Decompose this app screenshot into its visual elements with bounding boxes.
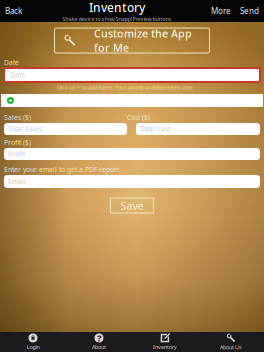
button[interactable]: Customize the App for Me [54, 28, 209, 53]
staticText: Date [4, 58, 19, 67]
staticText: Click on '+' to add Items. You can edit … [57, 84, 193, 91]
button[interactable]: Add item [1, 94, 14, 107]
staticText: Total Cost [140, 125, 170, 133]
staticText: Profit [8, 150, 25, 158]
button[interactable]: Login [0, 332, 66, 352]
staticText: Send [240, 6, 259, 16]
staticText: Shake device to show Snapp! Preview butt… [62, 15, 171, 22]
staticText: Total Sales [8, 125, 42, 133]
staticText: Login [26, 343, 39, 351]
staticText: Customize the App for Me [94, 26, 192, 55]
button[interactable]: Inventory [132, 332, 198, 352]
staticText: Enter your email to get a PDF report [4, 165, 119, 174]
staticText: More [211, 6, 231, 16]
staticText: Sales ($) [4, 113, 31, 122]
button[interactable]: Send [235, 0, 264, 22]
staticText: ? [97, 332, 101, 344]
staticText: Inventory [153, 343, 177, 351]
staticText: Inventory [89, 0, 145, 15]
staticText: Date [10, 71, 25, 79]
button[interactable]: Back [0, 0, 27, 22]
staticText: Email [8, 177, 26, 186]
button[interactable]: Save [110, 198, 153, 213]
staticText: About Us [220, 344, 242, 351]
staticText: Profit ($) [4, 138, 31, 147]
button[interactable]: ? [66, 332, 132, 352]
staticText: About [92, 343, 106, 351]
staticText: Save [120, 198, 143, 213]
button[interactable]: More [207, 0, 235, 22]
button[interactable]: About Us [198, 332, 264, 352]
staticText: Back [5, 6, 22, 16]
staticText: Cost ($) [127, 113, 150, 122]
